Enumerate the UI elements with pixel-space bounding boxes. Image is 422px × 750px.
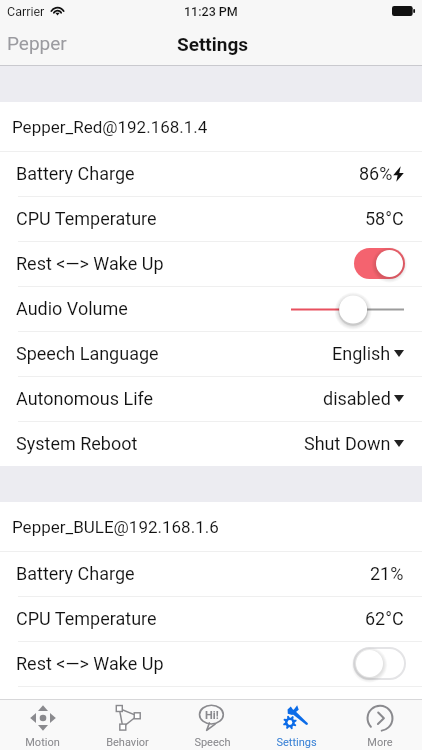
staticText: More [367, 736, 393, 749]
staticText: 21% [370, 563, 404, 584]
staticText: Speech [194, 736, 231, 749]
staticText: Pepper_BULE@192.168.1.6 [12, 517, 219, 537]
staticText: Carrier [7, 4, 45, 19]
staticText: 58°C [365, 208, 404, 229]
staticText: Autonomous Life [16, 388, 154, 409]
button[interactable]: Audio Volume slider [291, 286, 404, 331]
button[interactable]: Hi! [170, 700, 254, 750]
button[interactable]: Settings [254, 700, 338, 750]
staticText: disabled [323, 388, 391, 409]
staticText: Pepper [7, 32, 67, 54]
button[interactable]: Speech Language [0, 331, 422, 376]
staticText: Rest <—> Wake Up [16, 253, 164, 274]
staticText: Speech Language [16, 343, 159, 364]
staticText: System Reboot [16, 433, 138, 454]
staticText: Rest <—> Wake Up [16, 653, 164, 674]
staticText: Shut Down [304, 433, 391, 454]
button[interactable]: More [338, 700, 422, 750]
staticText: Battery Charge [16, 563, 135, 584]
button[interactable]: Rest <—> Wake Up [0, 641, 422, 686]
staticText: Battery Charge [16, 163, 135, 184]
staticText: Behavior [106, 736, 149, 749]
button[interactable]: Battery Charge [0, 551, 422, 596]
staticText: CPU Temperature [16, 608, 157, 629]
button[interactable]: Motion [0, 700, 85, 750]
staticText: Motion [25, 736, 60, 749]
button[interactable]: System Reboot [0, 421, 422, 466]
staticText: English [332, 343, 391, 364]
button[interactable]: Autonomous Life [0, 376, 422, 421]
staticText: 11:23 PM [184, 4, 238, 19]
staticText: 86% [359, 163, 393, 184]
staticText: Settings [276, 736, 317, 749]
button[interactable]: CPU Temperature [0, 596, 422, 641]
button[interactable]: Battery Charge [0, 151, 422, 196]
staticText: Hi! [205, 709, 219, 722]
staticText: Pepper_Red@192.168.1.4 [12, 117, 208, 137]
button[interactable]: Behavior [85, 700, 170, 750]
staticText: Settings [177, 33, 249, 55]
staticText: 62°C [365, 608, 404, 629]
button[interactable]: CPU Temperature [0, 196, 422, 241]
staticText: Audio Volume [16, 298, 128, 319]
button[interactable]: Pepper [0, 29, 79, 59]
staticText: CPU Temperature [16, 208, 157, 229]
button[interactable]: Rest <—> Wake Up [0, 241, 422, 286]
